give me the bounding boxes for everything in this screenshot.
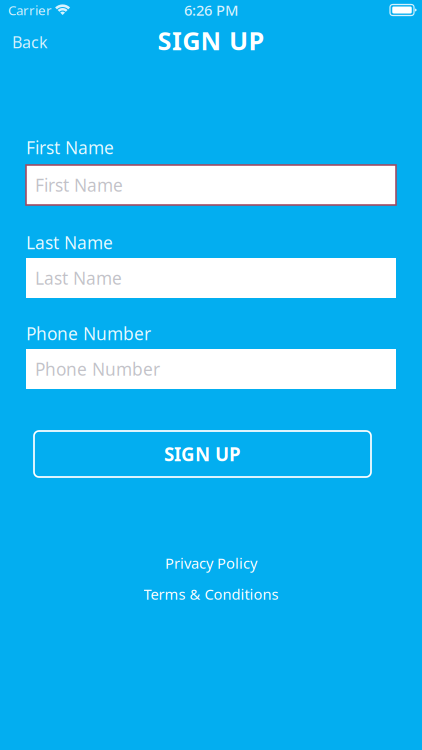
staticText: Last Name [35,266,122,289]
staticText: Last Name [26,231,113,254]
staticText: Terms & Conditions [143,584,278,604]
staticText: 6:26 PM [184,0,238,20]
button[interactable]: Phone Number [26,349,396,389]
button[interactable]: Last Name [26,258,396,298]
staticText: SIGN UP [164,442,241,466]
button[interactable]: Privacy Policy [151,552,271,574]
staticText: Phone Number [35,357,160,380]
staticText: Privacy Policy [165,553,257,573]
staticText: First Name [26,136,114,159]
button[interactable]: Terms & Conditions [129,583,292,605]
staticText: Phone Number [26,322,151,345]
staticText: SIGN UP [158,24,264,57]
staticText: Carrier [8,1,52,19]
staticText: First Name [35,173,123,196]
button[interactable]: First Name [26,165,396,205]
button[interactable]: SIGN UP [34,431,371,477]
button[interactable]: Back [0,20,60,60]
staticText: Back [12,31,48,53]
